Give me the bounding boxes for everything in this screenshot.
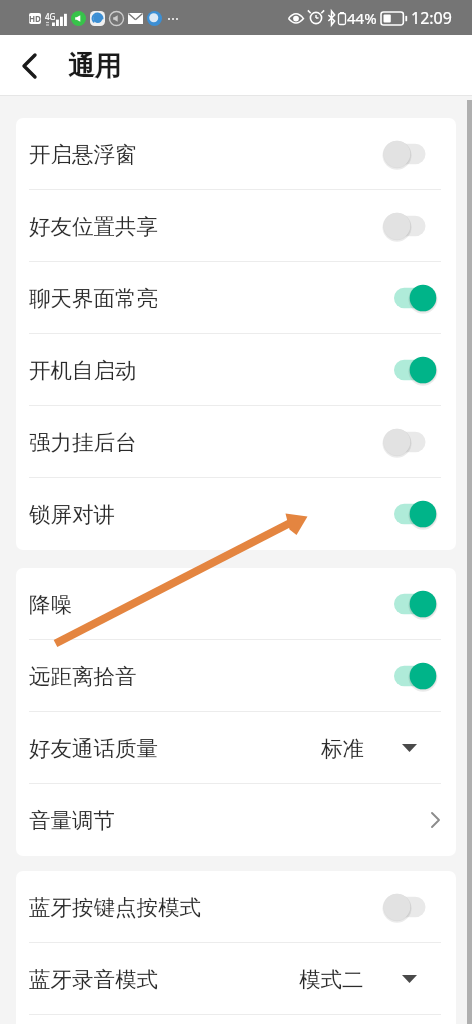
- staticText: 远距离拾音: [29, 663, 137, 690]
- staticText: 通用: [68, 49, 121, 82]
- button[interactable]: 好友位置共享: [16, 190, 456, 262]
- button[interactable]: Switch off: [384, 892, 452, 922]
- staticText: 好友通话质量: [29, 735, 158, 762]
- button[interactable]: 开机自启动: [16, 334, 456, 406]
- button[interactable]: 开启悬浮窗: [16, 118, 456, 190]
- button[interactable]: 音量调节: [16, 784, 456, 856]
- staticText: 12:09: [411, 7, 452, 29]
- button[interactable]: Switch on: [384, 661, 452, 691]
- button[interactable]: Switch on: [384, 499, 452, 529]
- button[interactable]: Switch off: [384, 139, 452, 169]
- staticText: 开启悬浮窗: [29, 141, 137, 168]
- button[interactable]: 聊天界面常亮: [16, 262, 456, 334]
- staticText: 好友位置共享: [29, 213, 158, 240]
- staticText: 锁屏对讲: [29, 501, 115, 528]
- staticText: 模式二: [299, 966, 364, 993]
- staticText: ···: [167, 8, 180, 28]
- staticText: HD: [29, 13, 41, 24]
- staticText: 蓝牙按键点按模式: [29, 894, 201, 921]
- button[interactable]: 好友通话质量: [16, 712, 456, 784]
- staticText: 标准: [321, 735, 364, 762]
- staticText: 4G: [45, 11, 56, 22]
- button[interactable]: Switch off: [384, 427, 452, 457]
- button[interactable]: Back: [0, 35, 58, 96]
- staticText: 音量调节: [29, 807, 115, 834]
- staticText: 蓝牙录音模式: [29, 966, 158, 993]
- button[interactable]: Switch on: [384, 355, 452, 385]
- staticText: 开机自启动: [29, 357, 137, 384]
- button[interactable]: 远距离拾音: [16, 640, 456, 712]
- staticText: 聊天界面常亮: [29, 285, 158, 312]
- button[interactable]: 蓝牙录音模式: [16, 943, 456, 1015]
- staticText: 强力挂后台: [29, 429, 137, 456]
- button[interactable]: Switch off: [384, 211, 452, 241]
- button[interactable]: 强力挂后台: [16, 406, 456, 478]
- staticText: 44%: [347, 8, 377, 28]
- button[interactable]: 降噪: [16, 568, 456, 640]
- button[interactable]: Switch on: [384, 589, 452, 619]
- staticText: 降噪: [29, 591, 72, 618]
- button[interactable]: Switch on: [384, 283, 452, 313]
- button[interactable]: 蓝牙按键点按模式: [16, 871, 456, 943]
- button[interactable]: 锁屏对讲: [16, 478, 456, 550]
